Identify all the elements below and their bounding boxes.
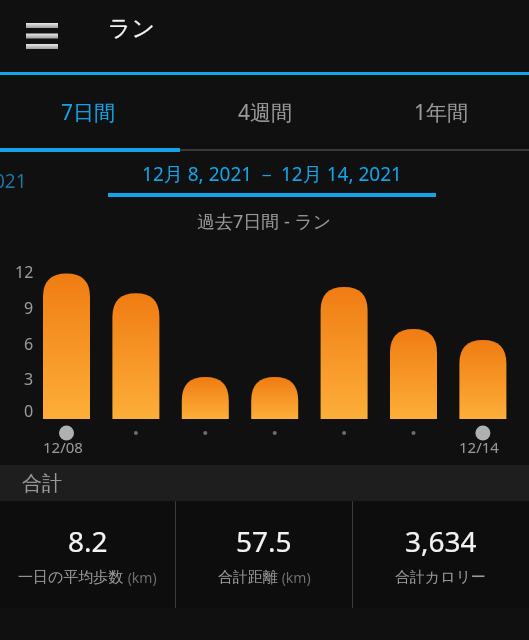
staticText: 021 — [0, 168, 27, 194]
button[interactable]: 3,634 — [353, 501, 529, 608]
staticText: 12月 8, 2021 － 12月 14, 2021 — [142, 161, 402, 187]
staticText: 12/08 — [43, 437, 83, 457]
staticText: 12/14 — [459, 437, 499, 457]
button[interactable]: 57.5 — [176, 501, 352, 608]
staticText: 57.5 — [236, 522, 292, 560]
staticText: 過去7日間 - ラン — [197, 209, 332, 234]
staticText: 12 — [15, 261, 34, 283]
staticText: 9 — [24, 297, 34, 319]
button[interactable]: Menu — [14, 9, 70, 63]
button[interactable]: 4週間 — [177, 75, 353, 149]
button[interactable]: 12月 8, 2021 － 12月 14, 2021 — [108, 161, 436, 187]
staticText: 3,634 — [405, 522, 477, 560]
button[interactable]: 1年間 — [353, 75, 529, 149]
staticText: 0 — [24, 400, 34, 422]
button[interactable]: 7日間 — [0, 75, 177, 149]
staticText: 3 — [24, 368, 34, 390]
staticText: 一日の平均歩数 — [18, 568, 124, 587]
staticText: (km) — [278, 568, 311, 587]
staticText: 合計 — [22, 471, 62, 496]
staticText: 6 — [24, 333, 34, 355]
staticText: 合計距離 — [218, 568, 278, 587]
staticText: 1年間 — [414, 98, 469, 127]
button[interactable]: 8.2 — [0, 501, 175, 608]
staticText: (km) — [124, 568, 157, 587]
staticText: 7日間 — [61, 98, 116, 127]
staticText: 8.2 — [68, 522, 108, 560]
staticText: 4週間 — [238, 98, 293, 127]
staticText: 合計カロリー — [395, 568, 487, 587]
staticText: ラン — [108, 14, 156, 43]
